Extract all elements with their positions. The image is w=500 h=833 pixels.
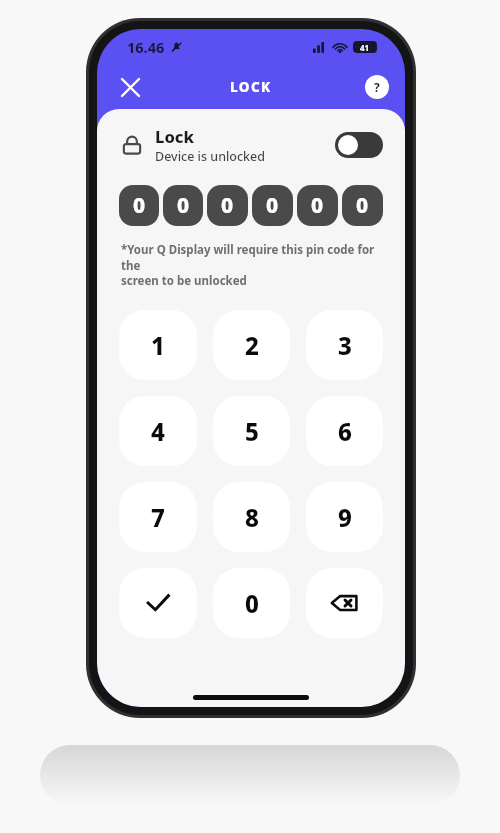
staticText: 0 [245,587,259,620]
button[interactable]: 0 [297,185,338,226]
staticText: 0 [356,191,369,220]
staticText: ? [374,79,380,95]
staticText: 4 [151,415,165,448]
button[interactable]: 9 [306,482,383,552]
button[interactable]: 1 [119,310,197,380]
button[interactable]: 0 [213,568,290,638]
staticText: 0 [266,191,279,220]
button[interactable]: 4 [119,396,197,466]
staticText: 9 [338,501,352,534]
staticText: 0 [221,191,234,220]
staticText: 2 [245,329,259,362]
button[interactable]: Backspace [306,568,383,638]
staticText: 3 [338,329,352,362]
button[interactable]: Lock toggle [335,132,383,158]
staticText: 5 [245,415,259,448]
staticText: 8 [245,501,259,534]
button[interactable]: 6 [306,396,383,466]
button[interactable]: Help [365,75,389,99]
button[interactable]: 3 [306,310,383,380]
button[interactable]: 0 [207,185,248,226]
button[interactable]: 8 [213,482,290,552]
staticText: 16.46 [127,37,165,57]
staticText: 7 [151,501,165,534]
staticText: *Your Q Display will require this pin co… [121,242,387,288]
button[interactable]: Confirm [119,568,197,638]
button[interactable]: Close [113,70,147,104]
staticText: LOCK [230,78,272,96]
button[interactable]: 7 [119,482,197,552]
staticText: 0 [177,191,190,220]
staticText: 6 [338,415,352,448]
button[interactable]: 0 [342,185,383,226]
staticText: 0 [133,191,146,220]
staticText: 1 [151,329,165,362]
button[interactable]: 2 [213,310,290,380]
button[interactable]: 0 [163,185,203,226]
button[interactable]: 0 [119,185,159,226]
button[interactable]: Lock [121,125,383,165]
staticText: Device is unlocked [155,148,266,165]
staticText: 0 [311,191,324,220]
button[interactable]: 0 [252,185,293,226]
staticText: Lock [155,125,195,147]
staticText: 41 [360,42,370,53]
button[interactable]: 5 [213,396,290,466]
